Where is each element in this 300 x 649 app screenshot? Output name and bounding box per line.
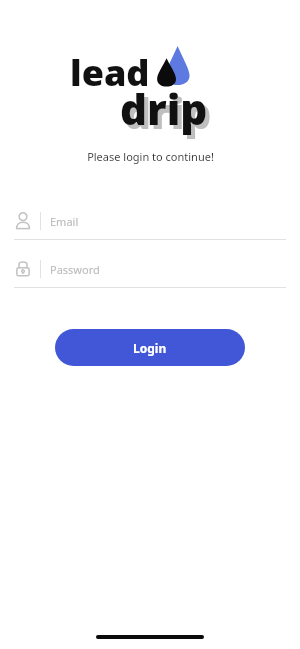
staticText: Password [50, 262, 100, 277]
staticText: Login [133, 340, 167, 356]
staticText: Please login to continue! [87, 149, 214, 164]
staticText: lead [70, 48, 150, 97]
staticText: drip [120, 80, 208, 137]
staticText: Email [50, 214, 79, 229]
button[interactable]: Password [14, 256, 286, 288]
button[interactable]: Login [55, 329, 245, 366]
button[interactable]: Email [14, 208, 286, 240]
staticText: drip [124, 84, 212, 141]
other: Password [14, 259, 32, 279]
other: Email [14, 211, 32, 231]
